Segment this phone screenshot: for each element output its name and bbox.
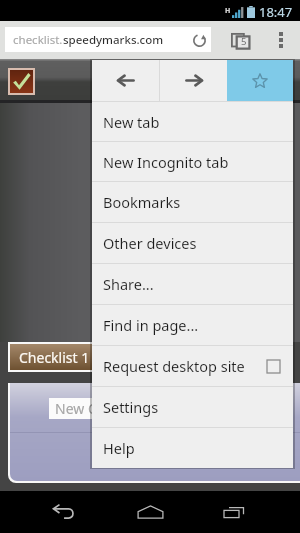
button[interactable]: Reload bbox=[190, 31, 208, 49]
button[interactable]: Settings bbox=[92, 387, 293, 427]
staticText: Help bbox=[103, 438, 135, 458]
button[interactable]: New tab bbox=[92, 102, 293, 141]
button[interactable]: Forward bbox=[160, 60, 227, 101]
staticText: New tab bbox=[103, 112, 160, 132]
staticText: Share... bbox=[103, 274, 154, 294]
button[interactable]: Share... bbox=[92, 264, 293, 304]
button[interactable]: New Checklist bbox=[49, 398, 159, 419]
staticText: Checklist 1 bbox=[19, 348, 90, 367]
button[interactable]: Tabs bbox=[226, 27, 254, 52]
staticText: 5 bbox=[241, 35, 247, 48]
button[interactable]: Recent apps bbox=[192, 491, 276, 533]
button[interactable]: Find in page... bbox=[92, 305, 293, 345]
button[interactable]: Back bbox=[24, 491, 108, 533]
staticText: New Incognito tab bbox=[103, 152, 229, 172]
staticText: New Checklist bbox=[55, 399, 147, 418]
button[interactable]: More options bbox=[269, 27, 293, 52]
staticText: Request desktop site bbox=[103, 356, 245, 376]
button[interactable]: Request desktop site bbox=[92, 346, 293, 386]
button[interactable]: Back bbox=[92, 60, 159, 101]
staticText: H bbox=[225, 6, 231, 16]
button[interactable]: Other devices bbox=[92, 223, 293, 263]
button[interactable]: Home bbox=[108, 491, 192, 533]
staticText: checklist. bbox=[13, 32, 63, 48]
staticText: Other devices bbox=[103, 233, 197, 253]
staticText: Settings bbox=[103, 397, 159, 417]
staticText: speedymarks.com bbox=[63, 32, 164, 48]
button[interactable]: Checklist 1 bbox=[10, 344, 189, 370]
staticText: 18:47 bbox=[259, 3, 293, 21]
button[interactable]: Site icon bbox=[10, 70, 33, 93]
button[interactable]: New Incognito tab bbox=[92, 142, 293, 181]
button[interactable]: Help bbox=[92, 428, 293, 468]
button[interactable]: checklist. bbox=[5, 27, 211, 52]
staticText: Find in page... bbox=[103, 315, 199, 335]
staticText: Bookmarks bbox=[103, 192, 181, 212]
button[interactable]: Bookmarks bbox=[92, 182, 293, 222]
button[interactable]: Bookmark this page bbox=[227, 60, 293, 101]
